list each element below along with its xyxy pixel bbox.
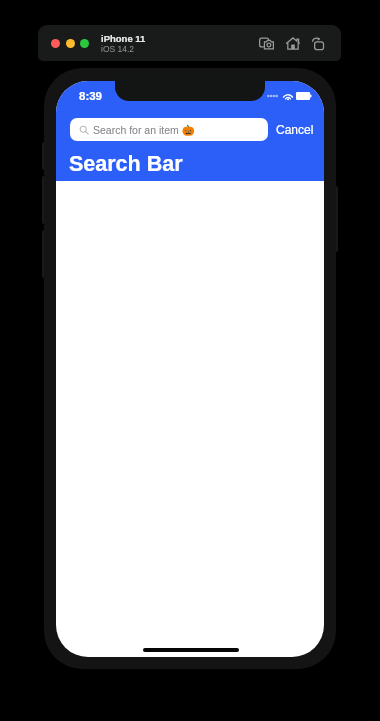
button[interactable]: Screenshot xyxy=(255,32,277,54)
staticText: Cancel xyxy=(276,123,313,136)
button[interactable]: Cancel xyxy=(276,118,313,141)
button[interactable]: Minimize window xyxy=(66,39,75,48)
button[interactable]: Rotate xyxy=(307,32,329,54)
staticText: iOS 14.2 xyxy=(101,44,135,53)
staticText: iPhone 11 xyxy=(101,33,146,44)
button[interactable]: Close window xyxy=(51,39,60,48)
staticText: Search for an item 🎃 xyxy=(93,124,195,136)
button[interactable]: Maximize window xyxy=(80,39,89,48)
staticText: Search Bar xyxy=(69,152,183,176)
button[interactable]: Home xyxy=(282,32,304,54)
staticText: 8:39 xyxy=(79,90,103,103)
button[interactable]: Search for an item 🎃 xyxy=(70,118,268,141)
